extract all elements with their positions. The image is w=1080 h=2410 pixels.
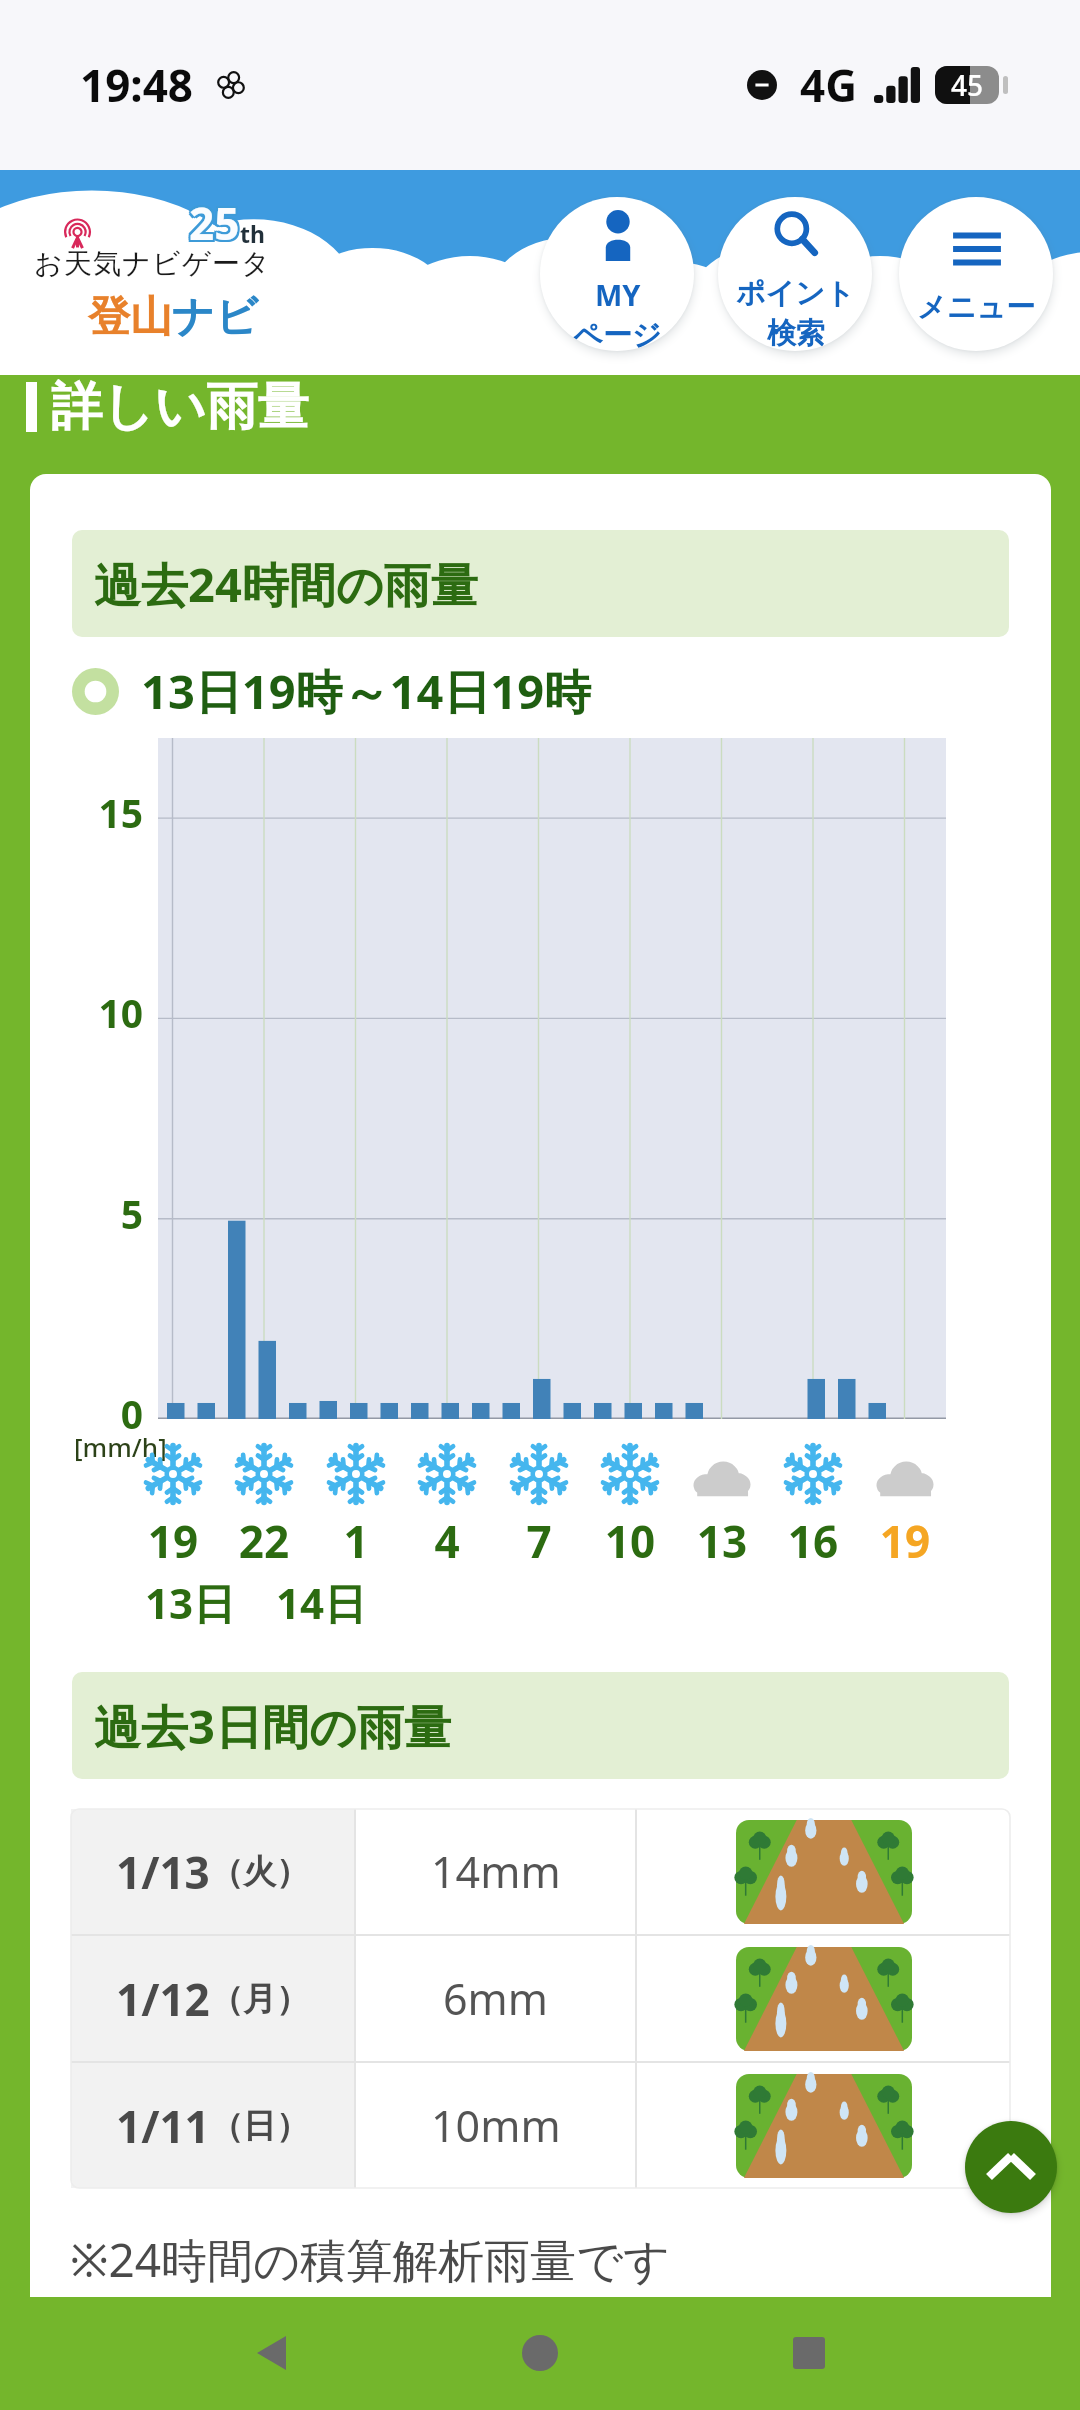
staticText: 過去24時間の雨量	[94, 552, 478, 616]
staticText: th	[240, 218, 265, 249]
staticText: [mm/h]	[74, 1429, 167, 1464]
staticText: 10	[585, 1511, 675, 1571]
staticText: 45	[951, 66, 984, 104]
staticText: 0	[63, 1387, 143, 1440]
staticText: （日）	[210, 2105, 309, 2147]
staticText: 10	[63, 986, 143, 1039]
staticText: 1	[311, 1511, 401, 1571]
button[interactable]: ポイント検索	[718, 197, 872, 351]
staticText: 19:48	[80, 55, 194, 115]
staticText: 25	[189, 195, 240, 255]
staticText: ポイント	[736, 275, 855, 312]
staticText: 詳しい雨量	[51, 375, 309, 439]
staticText: 25	[187, 195, 238, 255]
staticText: 4	[402, 1511, 492, 1571]
staticText: 25	[191, 191, 242, 251]
staticText: 19	[128, 1511, 218, 1571]
staticText: 13	[677, 1511, 767, 1571]
staticText: 13日19時～14日19時	[141, 659, 592, 723]
staticText: 25	[187, 193, 238, 253]
staticText: ※24時間の積算解析雨量です	[70, 2228, 671, 2291]
button[interactable]: メニュー	[899, 197, 1053, 351]
staticText: 25	[187, 191, 238, 251]
staticText: 10mm	[431, 2096, 561, 2155]
staticText: 4G	[800, 55, 858, 115]
staticText: 1/13	[116, 1842, 210, 1902]
button[interactable]: Scroll to top	[965, 2121, 1057, 2213]
staticText: （火）	[210, 1851, 309, 1893]
staticText: 14mm	[431, 1842, 561, 1901]
staticText: 6mm	[443, 1969, 549, 2028]
button[interactable]: MYページ	[540, 197, 694, 351]
staticText: 22	[219, 1511, 309, 1571]
staticText: 検索	[767, 315, 825, 351]
staticText: 1/12	[116, 1969, 210, 2029]
button[interactable]: Back	[216, 2298, 326, 2408]
staticText: 16	[768, 1511, 858, 1571]
staticText: 5	[63, 1187, 143, 1240]
staticText: 7	[494, 1511, 584, 1571]
staticText: ページ	[573, 317, 662, 351]
staticText: （月）	[210, 1978, 309, 2020]
staticText: 15	[63, 786, 143, 839]
staticText: 25	[191, 195, 242, 255]
staticText: お天気ナビゲータ	[34, 246, 271, 281]
button[interactable]: Home	[485, 2298, 595, 2408]
button[interactable]: Recents	[754, 2298, 864, 2408]
staticText: 14日	[276, 1574, 367, 1631]
staticText: 1/11	[116, 2096, 210, 2156]
staticText: MY	[595, 275, 641, 314]
staticText: 25	[191, 193, 242, 253]
staticText: 19	[860, 1511, 950, 1571]
staticText: 25	[189, 193, 240, 253]
staticText: メニュー	[917, 289, 1036, 326]
staticText: 25	[189, 191, 240, 251]
staticText: 13日	[145, 1574, 236, 1631]
staticText: 過去3日間の雨量	[94, 1694, 451, 1758]
staticText: 登山ナビ	[88, 291, 258, 344]
